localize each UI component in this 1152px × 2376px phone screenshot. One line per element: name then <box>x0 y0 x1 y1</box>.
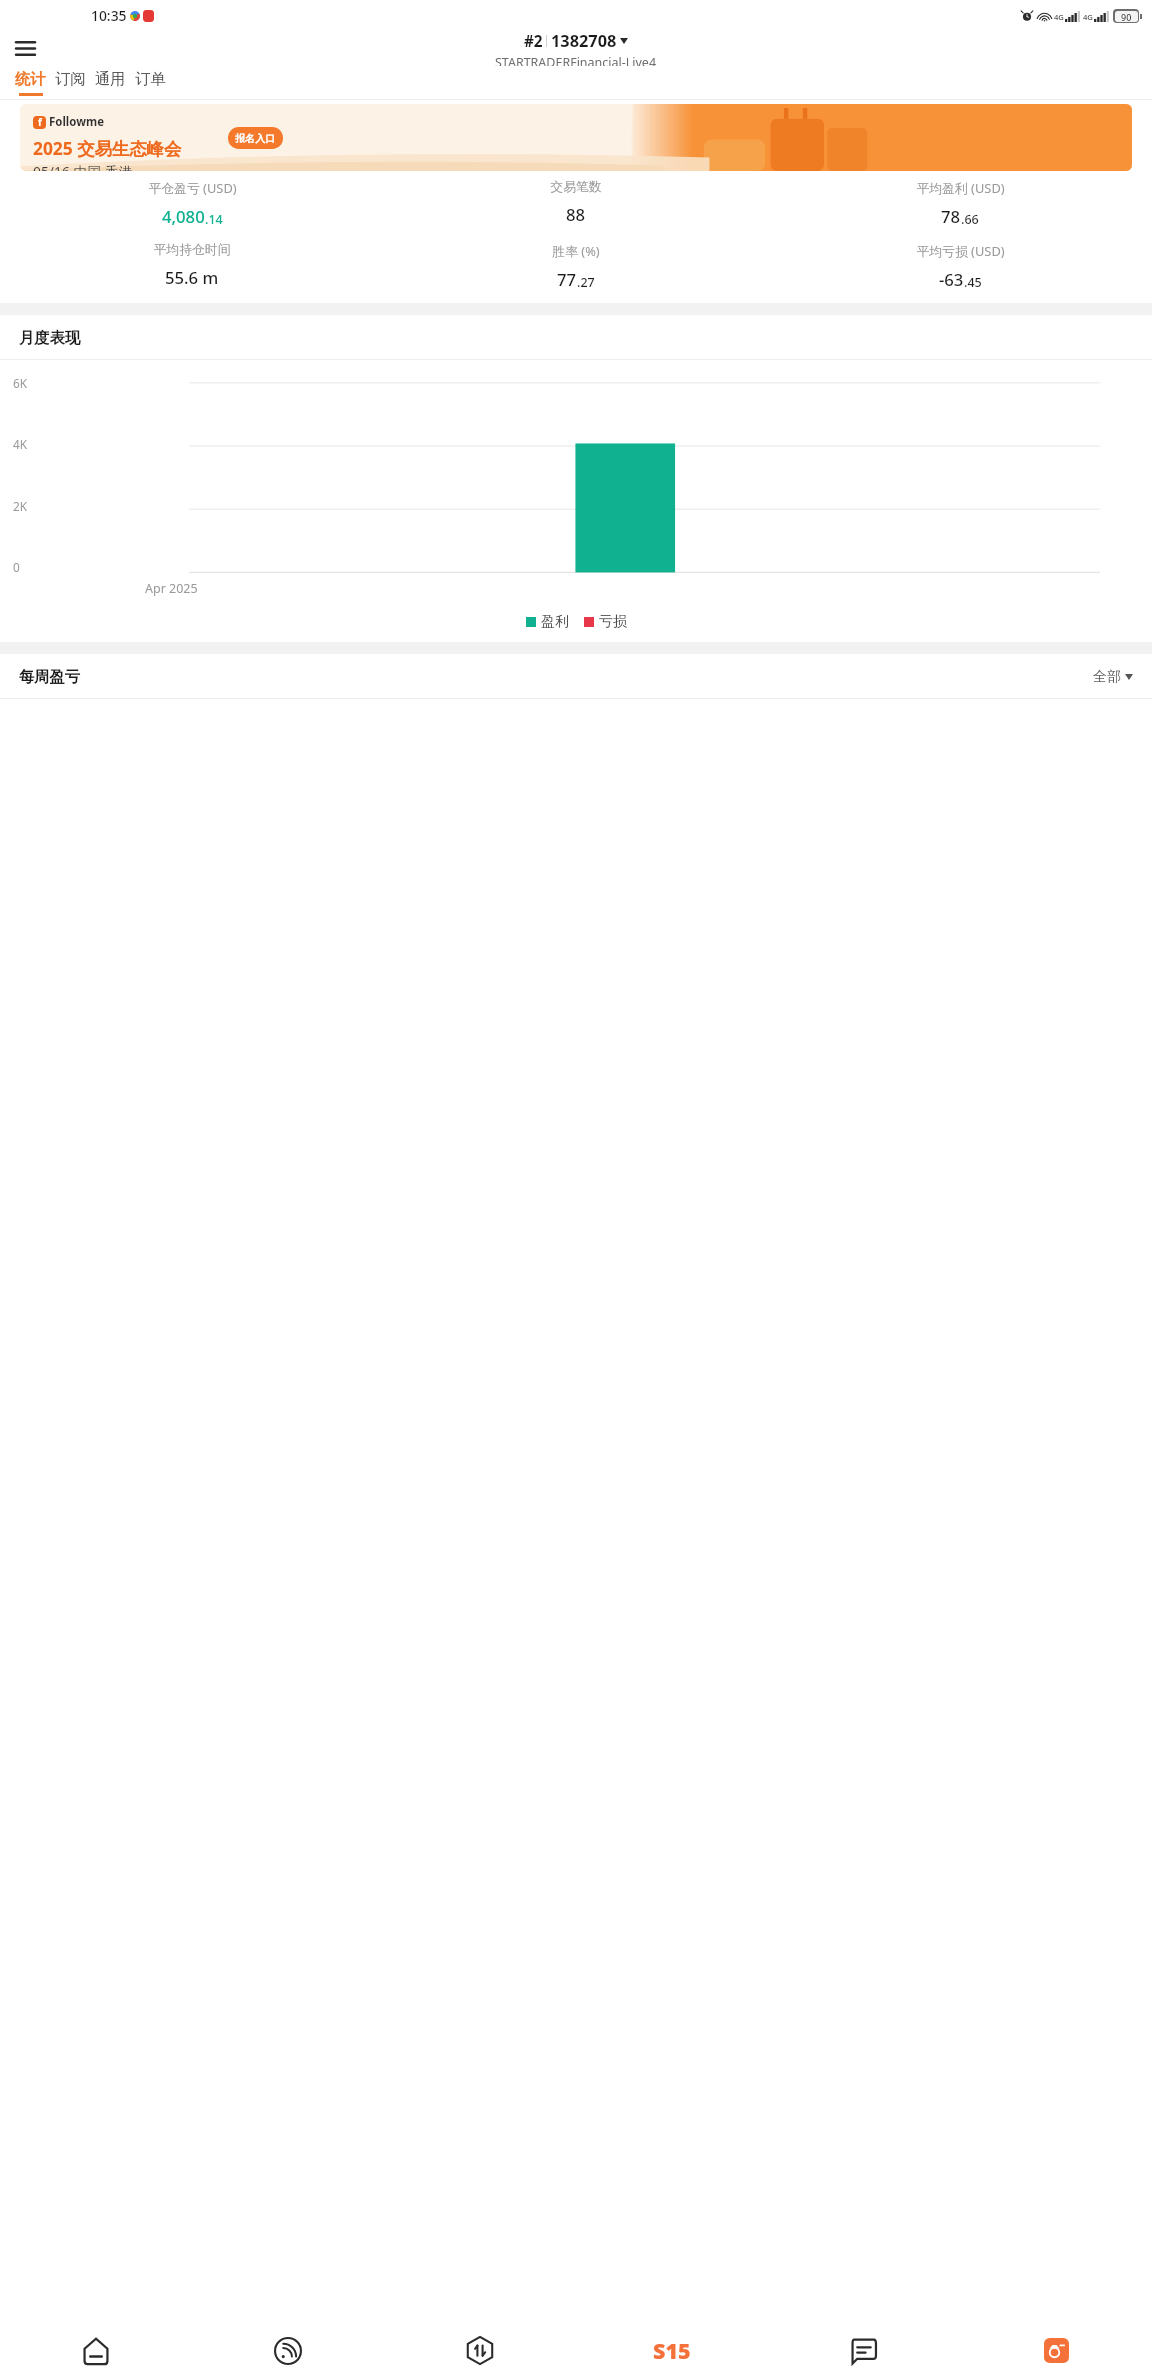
staticText: 订阅 <box>55 69 86 88</box>
staticText: .14 <box>205 211 223 228</box>
button[interactable]: Profile <box>960 2325 1152 2376</box>
staticText: 胜率 (%) <box>552 242 600 260</box>
staticText: 1382708 <box>551 30 617 52</box>
staticText: 2K <box>13 498 28 514</box>
staticText: 2025 交易生态峰会 <box>33 136 182 160</box>
button[interactable]: S15 <box>576 2325 768 2376</box>
button[interactable]: 盈利 <box>526 613 569 630</box>
staticText: Apr 2025 <box>145 580 198 597</box>
staticText: 4G <box>1054 12 1064 22</box>
staticText: #2 <box>524 31 543 52</box>
staticText: 6K <box>13 375 28 391</box>
staticText: STARTRADERFinancial-Live4 <box>495 54 657 66</box>
button[interactable]: 订单 <box>130 66 170 99</box>
staticText: 10:35 <box>91 6 127 25</box>
staticText: 77 <box>557 268 577 291</box>
staticText: 订单 <box>135 69 166 88</box>
staticText: 4K <box>13 436 28 452</box>
staticText: .45 <box>964 274 982 291</box>
staticText: -63 <box>939 268 964 291</box>
staticText: .66 <box>961 211 979 228</box>
button[interactable]: Trade <box>384 2325 576 2376</box>
staticText: S15 <box>653 2336 691 2365</box>
button[interactable]: 亏损 <box>584 613 627 630</box>
staticText: 通用 <box>95 69 126 88</box>
staticText: Followme <box>49 114 105 130</box>
staticText: 90 <box>1121 11 1132 22</box>
staticText: 统计 <box>15 69 46 88</box>
staticText: 4,080 <box>162 205 205 228</box>
button[interactable]: Messages <box>768 2325 960 2376</box>
staticText: 平均盈利 (USD) <box>916 179 1005 197</box>
staticText: 交易笔数 <box>550 179 602 195</box>
staticText: 平均亏损 (USD) <box>916 242 1005 260</box>
staticText: 05/16 中国·香港 <box>33 162 133 171</box>
staticText: 55.6 m <box>165 266 219 289</box>
staticText: 月度表现 <box>19 328 81 347</box>
staticText: f <box>38 116 42 129</box>
button[interactable]: 订阅 <box>50 66 90 99</box>
staticText: 0 <box>13 559 20 575</box>
staticText: 4G <box>1083 12 1093 22</box>
staticText: 亏损 <box>599 613 627 630</box>
button[interactable]: Signals <box>192 2325 384 2376</box>
staticText: 平均持仓时间 <box>153 242 231 258</box>
button[interactable]: Home <box>0 2325 192 2376</box>
staticText: 报名入口 <box>235 132 276 145</box>
staticText: .27 <box>577 274 595 291</box>
button[interactable]: 通用 <box>90 66 130 99</box>
button[interactable]: 统计 <box>10 66 50 99</box>
button[interactable]: f <box>20 104 1132 171</box>
staticText: 平仓盈亏 (USD) <box>148 179 237 197</box>
staticText: 88 <box>566 203 586 226</box>
button[interactable]: 全部 <box>1093 668 1133 685</box>
staticText: 全部 <box>1093 668 1121 685</box>
staticText: 盈利 <box>541 613 569 630</box>
staticText: 78 <box>941 205 961 228</box>
button[interactable]: 报名入口 <box>228 127 283 149</box>
button[interactable]: Menu <box>12 35 38 61</box>
staticText: 每周盈亏 <box>19 667 81 686</box>
